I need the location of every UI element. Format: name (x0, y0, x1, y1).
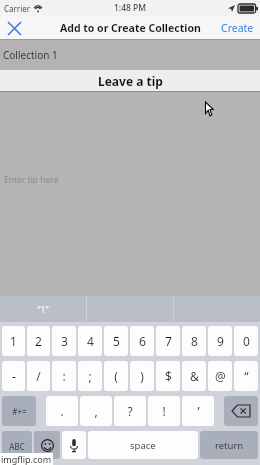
staticText: 9 (217, 333, 224, 349)
staticText: Enter tip here (4, 174, 59, 186)
staticText: & (190, 368, 199, 384)
button[interactable]: / (27, 361, 50, 391)
staticText: ( (114, 368, 118, 384)
staticText: ; (88, 368, 92, 384)
button[interactable]: ABC (2, 431, 32, 461)
staticText: Create (221, 21, 254, 35)
button[interactable]: ! (148, 396, 180, 426)
staticText: “1” (37, 303, 49, 315)
staticText: “ (244, 368, 249, 384)
staticText: $ (165, 368, 172, 384)
staticText: - (12, 368, 16, 384)
button[interactable]: Dictation (62, 431, 86, 459)
button[interactable]: space (88, 431, 198, 459)
staticText: Collection 1 (3, 48, 58, 62)
button[interactable]: 9 (208, 326, 232, 356)
button[interactable]: 0 (234, 326, 258, 356)
staticText: imgflip.com (1, 453, 52, 465)
button[interactable]: 1 (2, 326, 25, 356)
button[interactable]: Collection 1 (0, 40, 260, 70)
button[interactable]: @ (208, 361, 232, 391)
staticText: 6 (139, 333, 146, 349)
staticText: 2 (35, 333, 42, 349)
button[interactable]: : (52, 361, 76, 391)
button[interactable]: ; (78, 361, 102, 391)
button[interactable]: ’ (182, 396, 214, 426)
staticText: , (94, 403, 98, 419)
staticText: #+= (12, 406, 27, 417)
staticText: ABC (9, 441, 25, 452)
button[interactable]: Backspace (224, 396, 258, 426)
staticText: : (62, 368, 66, 384)
staticText: 3 (61, 333, 68, 349)
button[interactable]: Emoji (34, 431, 60, 459)
button[interactable]: - (2, 361, 25, 391)
button[interactable]: ( (104, 361, 128, 391)
staticText: return (215, 439, 244, 452)
button[interactable]: . (46, 396, 78, 426)
button[interactable]: ? (114, 396, 146, 426)
staticText: space (130, 439, 156, 452)
button[interactable]: , (80, 396, 112, 426)
staticText: 1 (10, 333, 17, 349)
button[interactable]: “1” (0, 296, 86, 322)
button[interactable]: 7 (156, 326, 180, 356)
staticText: Leave a tip (98, 73, 163, 89)
button[interactable]: Close (0, 16, 28, 40)
staticText: 5 (113, 333, 120, 349)
button[interactable]: 6 (130, 326, 154, 356)
staticText: 0 (243, 333, 250, 349)
staticText: / (36, 368, 41, 384)
staticText: ! (162, 403, 166, 419)
button[interactable]: 4 (78, 326, 102, 356)
staticText: ) (140, 368, 144, 384)
button[interactable]: 8 (182, 326, 206, 356)
staticText: ’ (197, 403, 200, 419)
staticText: 8 (191, 333, 198, 349)
button[interactable]: return (200, 431, 258, 459)
staticText: 7 (165, 333, 172, 349)
staticText: ? (127, 403, 133, 419)
staticText: @ (215, 368, 226, 384)
button[interactable]: “ (234, 361, 258, 391)
button[interactable]: & (182, 361, 206, 391)
staticText: . (60, 403, 64, 419)
staticText: Carrier (4, 3, 31, 14)
button[interactable]: Create (215, 16, 260, 40)
button[interactable]: ) (130, 361, 154, 391)
staticText: 4 (87, 333, 94, 349)
button[interactable]: 2 (27, 326, 50, 356)
button[interactable]: 5 (104, 326, 128, 356)
staticText: 1:48 PM (114, 2, 147, 14)
button[interactable]: $ (156, 361, 180, 391)
button[interactable]: #+= (2, 396, 36, 426)
button[interactable]: 3 (52, 326, 76, 356)
staticText: Add to or Create Collection (60, 21, 201, 35)
